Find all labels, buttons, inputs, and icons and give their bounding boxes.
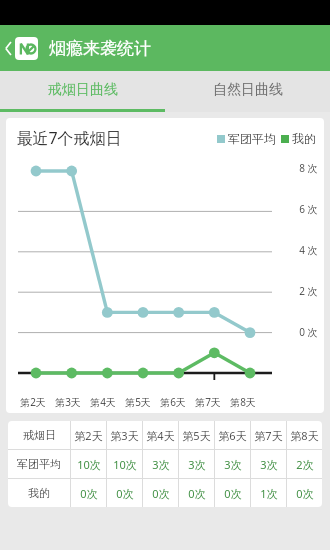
staticText: 第4天: [146, 428, 175, 443]
staticText: 8 次: [299, 161, 318, 175]
staticText: 3次: [188, 457, 206, 472]
staticText: 0次: [296, 486, 314, 501]
staticText: 10次: [77, 457, 101, 472]
staticText: 第7天: [254, 428, 283, 443]
button[interactable]: Back: [5, 25, 38, 71]
staticText: 第5天: [182, 428, 211, 443]
staticText: 自然日曲线: [213, 81, 283, 99]
staticText: 第6天: [218, 428, 247, 443]
button[interactable]: 自然日曲线: [165, 71, 330, 109]
staticText: 0次: [80, 486, 98, 501]
staticText: 2次: [296, 457, 314, 472]
staticText: 我的: [28, 486, 50, 500]
staticText: 第4天: [90, 395, 116, 409]
button[interactable]: 戒烟日曲线: [0, 71, 165, 109]
staticText: 2 次: [299, 284, 318, 298]
staticText: 第3天: [110, 428, 139, 443]
staticText: 0次: [224, 486, 242, 501]
staticText: 戒烟日: [23, 428, 56, 442]
staticText: 第2天: [74, 428, 103, 443]
staticText: 最近7个戒烟日: [16, 127, 122, 149]
staticText: 第6天: [160, 395, 186, 409]
staticText: 第8天: [290, 428, 319, 443]
staticText: 6 次: [299, 202, 318, 216]
staticText: 0次: [152, 486, 170, 501]
staticText: 第2天: [20, 395, 46, 409]
staticText: 我的: [292, 131, 316, 146]
staticText: 3次: [260, 457, 278, 472]
staticText: 0 次: [299, 325, 318, 339]
staticText: 烟瘾来袭统计: [49, 38, 151, 59]
staticText: 第3天: [55, 395, 81, 409]
staticText: 4 次: [299, 243, 318, 257]
staticText: 戒烟日曲线: [48, 81, 118, 99]
staticText: 0次: [188, 486, 206, 501]
staticText: 1次: [260, 486, 278, 501]
staticText: 军团平均: [17, 457, 61, 471]
staticText: 3次: [152, 457, 170, 472]
staticText: 第5天: [125, 395, 151, 409]
staticText: 军团平均: [228, 131, 276, 146]
staticText: 0次: [116, 486, 134, 501]
staticText: 10次: [113, 457, 137, 472]
staticText: 第8天: [230, 395, 256, 409]
staticText: 第7天: [195, 395, 221, 409]
staticText: 3次: [224, 457, 242, 472]
